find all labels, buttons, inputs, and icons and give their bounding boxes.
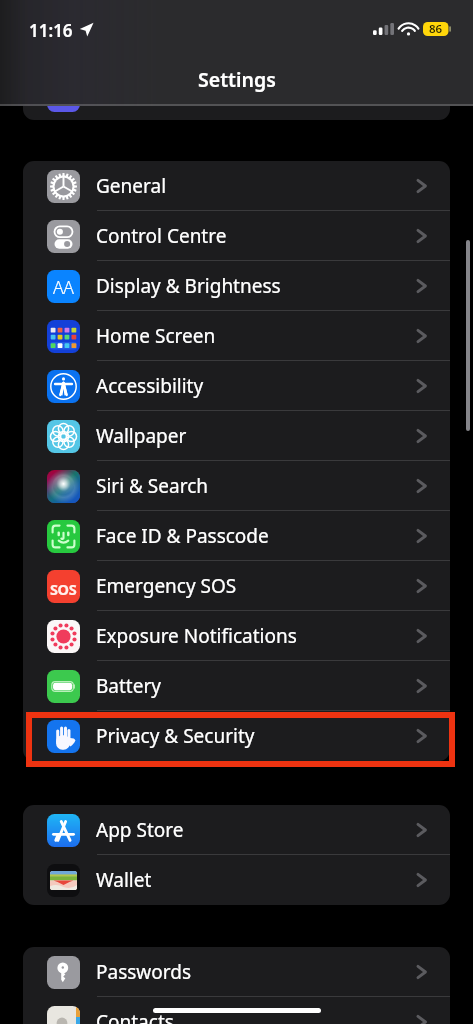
staticText: 11:16	[29, 19, 73, 42]
staticText: Battery	[96, 673, 161, 699]
button[interactable]: Privacy & Security	[23, 711, 450, 761]
button[interactable]: Battery	[23, 661, 450, 711]
button[interactable]: Wallet	[23, 855, 450, 905]
staticText: General	[96, 173, 167, 199]
staticText: Emergency SOS	[96, 573, 237, 599]
staticText: Display & Brightness	[96, 273, 281, 299]
staticText: Home Screen	[96, 323, 216, 349]
staticText: Face ID & Passcode	[96, 523, 269, 549]
staticText: 86	[429, 21, 443, 37]
button[interactable]: Face ID & Passcode	[23, 511, 450, 561]
button[interactable]: AA	[23, 261, 450, 311]
button[interactable]: SOS	[23, 561, 450, 611]
staticText: App Store	[96, 817, 184, 843]
button[interactable]: Contacts	[23, 997, 450, 1024]
button[interactable]: App Store	[23, 805, 450, 855]
button[interactable]: General	[23, 161, 450, 211]
staticText: Siri & Search	[96, 473, 209, 499]
button[interactable]: Exposure Notifications	[23, 611, 450, 661]
button[interactable]: Accessibility	[23, 361, 450, 411]
staticText: Exposure Notifications	[96, 623, 297, 649]
staticText: Settings	[198, 66, 276, 93]
staticText: Privacy & Security	[96, 723, 255, 749]
button[interactable]: Home Screen	[23, 311, 450, 361]
staticText: Accessibility	[96, 373, 204, 399]
staticText: Wallpaper	[96, 423, 187, 449]
staticText: Passwords	[96, 959, 192, 985]
button[interactable]: Siri & Search	[23, 461, 450, 511]
button[interactable]: Control Centre	[23, 211, 450, 261]
button[interactable]: Passwords	[23, 947, 450, 997]
staticText: AA	[53, 275, 74, 299]
button[interactable]: Wallpaper	[23, 411, 450, 461]
staticText: Wallet	[96, 867, 152, 893]
staticText: SOS	[50, 579, 77, 599]
staticText: Contacts	[96, 1009, 174, 1024]
staticText: Notifications	[96, 82, 210, 108]
staticText: Control Centre	[96, 223, 227, 249]
